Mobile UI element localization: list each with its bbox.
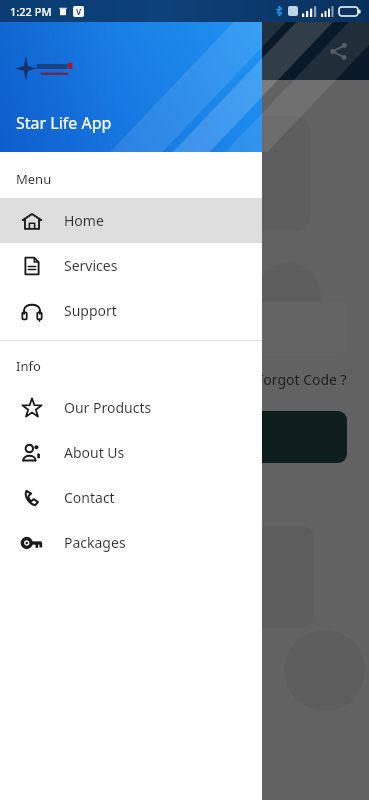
staticText: Our Products xyxy=(64,398,152,417)
button[interactable] xyxy=(22,302,347,356)
button[interactable]: Forgot Code ? xyxy=(256,370,347,389)
staticText: V xyxy=(76,6,82,17)
staticText: Packages xyxy=(64,533,126,552)
staticText: Info xyxy=(16,357,41,375)
staticText: Contact xyxy=(64,488,115,507)
button[interactable]: Share xyxy=(321,34,355,68)
staticText: Support xyxy=(64,301,117,320)
button[interactable]: Services xyxy=(0,243,262,288)
button[interactable]: About Us xyxy=(0,430,262,475)
button[interactable]: Our Products xyxy=(0,385,262,430)
button[interactable]: Home xyxy=(0,198,262,243)
button[interactable]: Login xyxy=(22,411,347,463)
staticText: About Us xyxy=(64,443,125,462)
staticText: Home xyxy=(64,211,104,230)
button[interactable]: Packages xyxy=(0,520,262,565)
staticText: Services xyxy=(64,256,118,275)
button[interactable]: Support xyxy=(0,288,262,333)
staticText: Forgot Code ? xyxy=(256,370,347,389)
button[interactable]: Contact xyxy=(0,475,262,520)
staticText: Star Life App xyxy=(16,112,112,134)
staticText: 1:22 PM xyxy=(10,4,52,19)
staticText: Menu xyxy=(16,170,52,188)
